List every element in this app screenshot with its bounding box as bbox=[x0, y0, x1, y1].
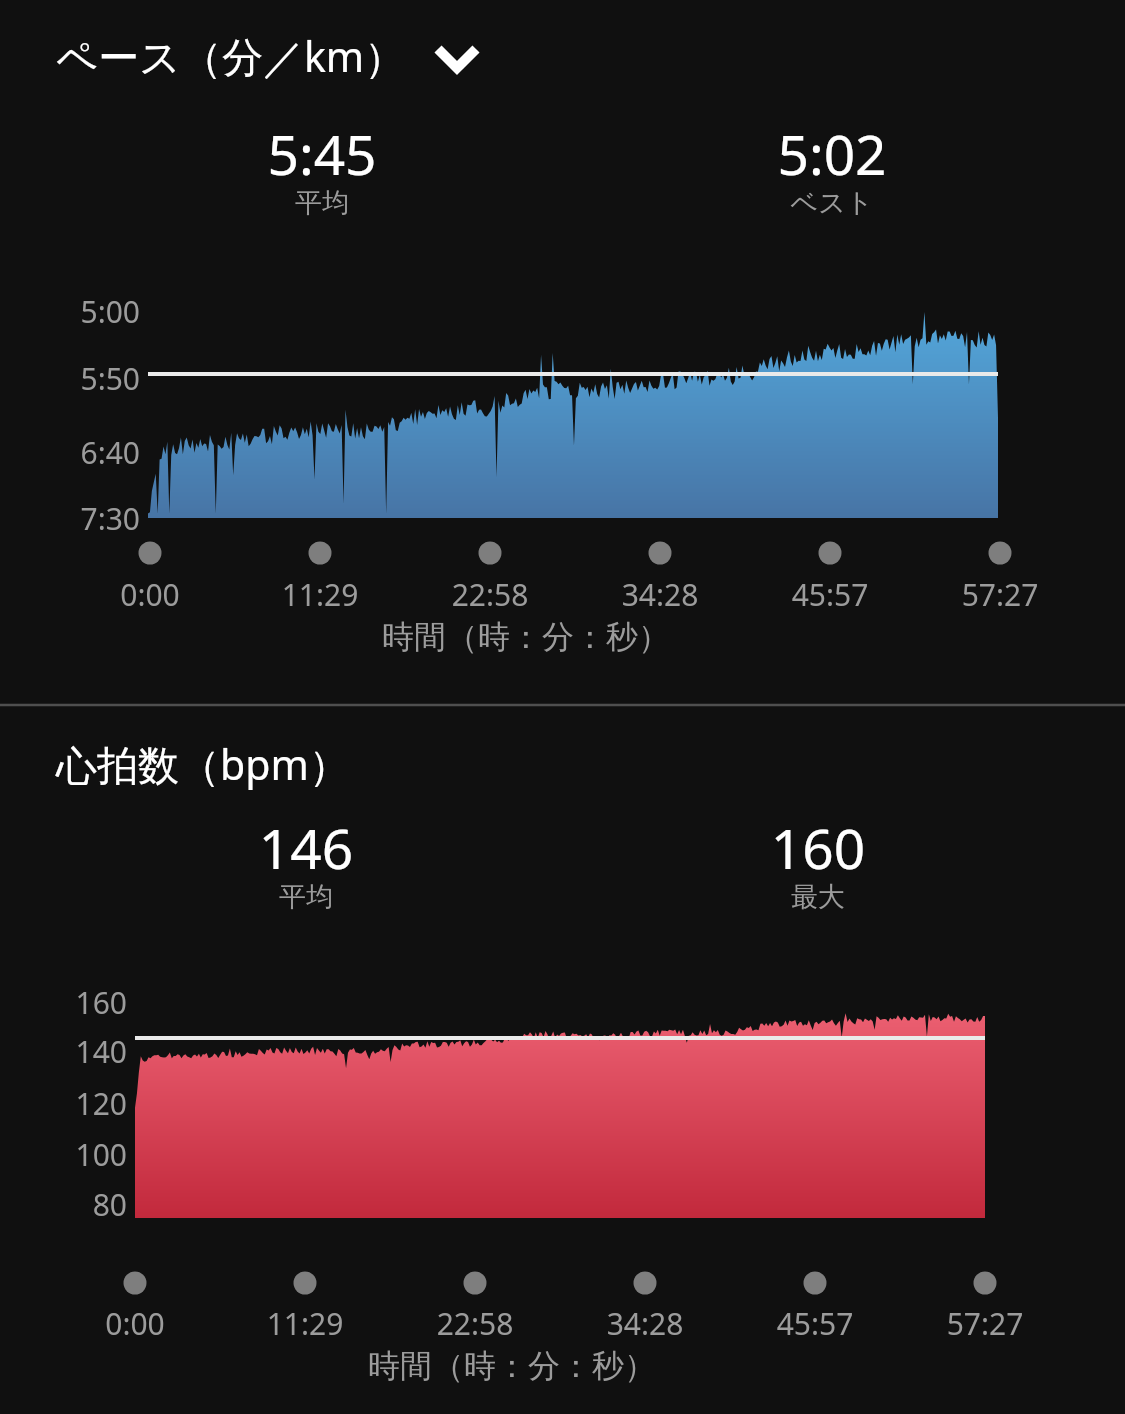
button[interactable]: 5:02 bbox=[622, 116, 1042, 228]
staticText: 5:45 bbox=[112, 116, 532, 191]
staticText: 146 bbox=[96, 810, 516, 885]
staticText: 45:57 bbox=[745, 1303, 885, 1344]
staticText: 57:27 bbox=[930, 574, 1070, 615]
button[interactable]: 心拍数（bpm） bbox=[52, 726, 382, 794]
button[interactable]: 146 bbox=[96, 810, 516, 922]
button[interactable]: 160 bbox=[608, 810, 1028, 922]
staticText: 7:30 bbox=[58, 498, 140, 539]
staticText: 6:40 bbox=[58, 432, 140, 473]
staticText: 最大 bbox=[608, 880, 1028, 914]
staticText: 時間（時：分：秒） bbox=[382, 617, 762, 657]
staticText: ペース（分／km） bbox=[56, 28, 406, 84]
staticText: 0:00 bbox=[65, 1303, 205, 1344]
staticText: 160 bbox=[45, 982, 127, 1023]
button[interactable]: 5:45 bbox=[112, 116, 532, 228]
staticText: 平均 bbox=[112, 186, 532, 220]
staticText: 34:28 bbox=[575, 1303, 715, 1344]
staticText: 5:50 bbox=[58, 358, 140, 399]
staticText: 34:28 bbox=[590, 574, 730, 615]
staticText: 5:00 bbox=[58, 291, 140, 332]
staticText: 22:58 bbox=[420, 574, 560, 615]
staticText: 22:58 bbox=[405, 1303, 545, 1344]
staticText: ベスト bbox=[622, 186, 1042, 220]
staticText: 80 bbox=[45, 1184, 127, 1225]
staticText: 120 bbox=[45, 1083, 127, 1124]
staticText: 160 bbox=[608, 810, 1028, 885]
staticText: 57:27 bbox=[915, 1303, 1055, 1344]
staticText: 11:29 bbox=[250, 574, 390, 615]
staticText: 平均 bbox=[96, 880, 516, 914]
staticText: 0:00 bbox=[80, 574, 220, 615]
staticText: 時間（時：分：秒） bbox=[368, 1346, 748, 1386]
staticText: 100 bbox=[45, 1134, 127, 1175]
staticText: 140 bbox=[45, 1031, 127, 1072]
staticText: 45:57 bbox=[760, 574, 900, 615]
button[interactable]: ペース（分／km） bbox=[52, 18, 482, 86]
staticText: 11:29 bbox=[235, 1303, 375, 1344]
staticText: 心拍数（bpm） bbox=[56, 736, 350, 792]
staticText: 5:02 bbox=[622, 116, 1042, 191]
